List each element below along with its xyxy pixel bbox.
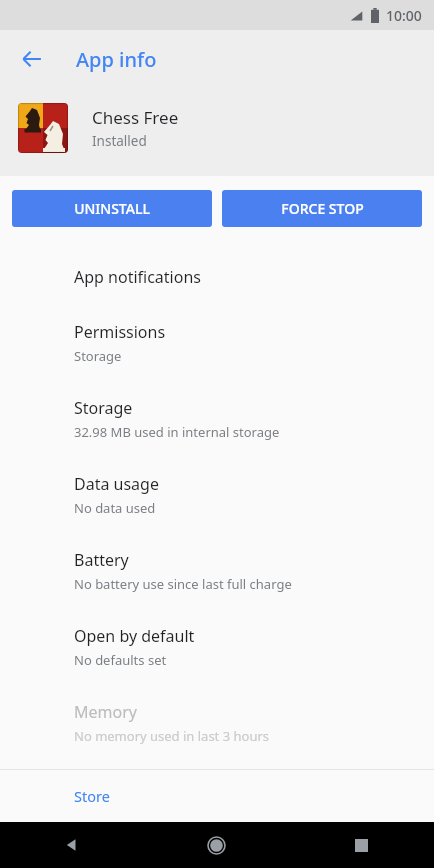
button[interactable]: Permissions	[0, 305, 434, 381]
button[interactable]: Open by default	[0, 609, 434, 685]
staticText: Chess Free	[92, 106, 179, 129]
staticText: Data usage	[74, 473, 159, 495]
button[interactable]: Storage	[0, 381, 434, 457]
button[interactable]: Back	[0, 822, 144, 868]
button[interactable]: Data usage	[0, 457, 434, 533]
button[interactable]: FORCE STOP	[222, 190, 422, 227]
staticText: App notifications	[74, 266, 201, 288]
staticText: App info	[76, 46, 157, 73]
staticText: Installed	[92, 132, 147, 150]
staticText: UNINSTALL	[74, 199, 150, 218]
staticText: Battery	[74, 549, 129, 571]
button[interactable]: Back	[8, 35, 56, 83]
button[interactable]: Battery	[0, 533, 434, 609]
button[interactable]: Store	[0, 770, 434, 822]
staticText: Storage	[74, 347, 122, 365]
button[interactable]: Home	[144, 822, 289, 868]
staticText: No battery use since last full charge	[74, 575, 292, 593]
staticText: Permissions	[74, 321, 166, 343]
button[interactable]: Chess Free	[0, 88, 434, 168]
staticText: No data used	[74, 499, 156, 517]
button[interactable]: UNINSTALL	[12, 190, 212, 227]
staticText: Store	[74, 786, 110, 806]
staticText: 32.98 MB used in internal storage	[74, 423, 280, 441]
staticText: Storage	[74, 397, 133, 419]
staticText: Open by default	[74, 625, 195, 647]
staticText: No memory used in last 3 hours	[74, 727, 270, 745]
staticText: FORCE STOP	[281, 199, 364, 218]
staticText: No defaults set	[74, 651, 167, 669]
button[interactable]: Memory	[0, 685, 434, 761]
staticText: 10:00	[386, 6, 422, 25]
button[interactable]: Recent apps	[289, 822, 434, 868]
button[interactable]: App notifications	[0, 249, 434, 305]
staticText: Memory	[74, 701, 137, 723]
